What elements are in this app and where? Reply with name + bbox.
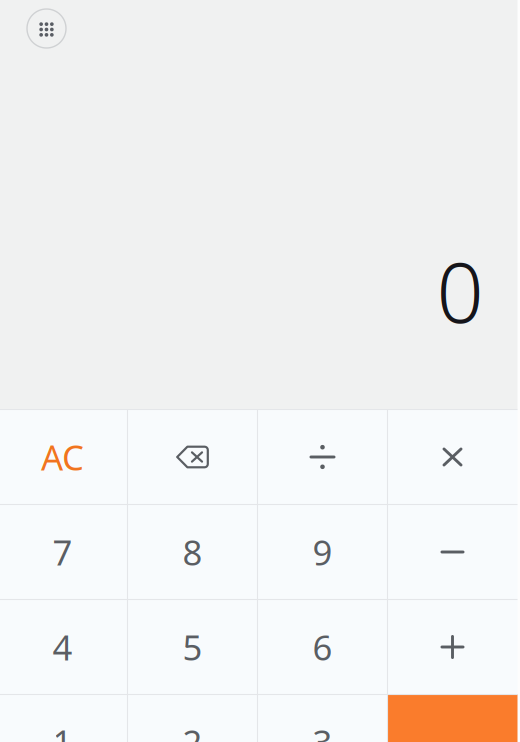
button[interactable]: Divide: [257, 409, 387, 504]
button[interactable]: Multiply: [387, 409, 517, 504]
button[interactable]: 1: [0, 694, 127, 742]
button[interactable]: 5: [127, 599, 257, 694]
staticText: 7: [52, 529, 72, 575]
button[interactable]: 3: [257, 694, 387, 742]
staticText: 6: [312, 624, 332, 670]
button[interactable]: 7: [0, 504, 127, 599]
button[interactable]: 6: [257, 599, 387, 694]
button[interactable]: Minus: [387, 504, 517, 599]
staticText: 3: [312, 719, 332, 742]
staticText: 0: [436, 236, 483, 345]
button[interactable]: Plus: [387, 599, 517, 694]
button[interactable]: 9: [257, 504, 387, 599]
button[interactable]: 2: [127, 694, 257, 742]
staticText: 8: [182, 529, 202, 575]
button[interactable]: AC: [0, 409, 127, 504]
button[interactable]: 8: [127, 504, 257, 599]
staticText: 5: [182, 624, 202, 670]
staticText: 9: [312, 529, 332, 575]
button[interactable]: Equals: [387, 694, 517, 742]
staticText: AC: [41, 434, 84, 480]
button[interactable]: 4: [0, 599, 127, 694]
button[interactable]: Delete: [127, 409, 257, 504]
staticText: 2: [182, 719, 202, 742]
button[interactable]: Keypad: [17, 0, 75, 57]
staticText: 4: [52, 624, 72, 670]
staticText: 1: [52, 719, 72, 742]
